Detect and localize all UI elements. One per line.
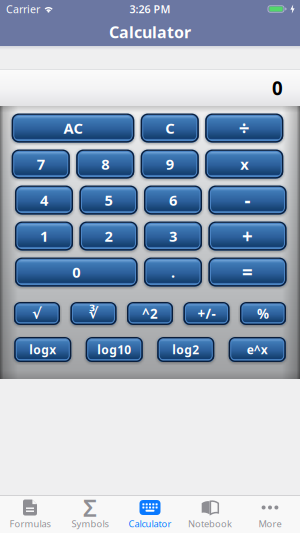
staticText: + (242, 224, 253, 248)
button[interactable]: √ (14, 302, 60, 325)
button[interactable]: logx (14, 337, 71, 362)
staticText: 8 (101, 154, 109, 174)
staticText: 3:26 PM (129, 2, 170, 16)
staticText: 3 (169, 226, 177, 246)
button[interactable]: 7 (12, 149, 70, 178)
button[interactable]: = (208, 257, 286, 286)
staticText: Carrier (6, 2, 40, 16)
staticText: AC (63, 118, 82, 138)
staticText: 5 (104, 190, 112, 210)
button[interactable]: 4 (15, 185, 73, 214)
button[interactable]: AC (12, 113, 134, 142)
staticText: √ (32, 305, 42, 322)
button[interactable]: 2 (79, 221, 137, 250)
button[interactable]: + (208, 221, 286, 250)
staticText: e^x (247, 341, 268, 357)
staticText: log2 (172, 341, 199, 357)
staticText: 6 (169, 190, 177, 210)
staticText: 0 (272, 76, 283, 100)
staticText: +/- (197, 305, 215, 322)
staticText: log10 (97, 341, 131, 357)
button[interactable]: e^x (229, 337, 286, 362)
button[interactable]: 3 (144, 221, 202, 250)
button[interactable]: 5 (79, 185, 137, 214)
button[interactable]: % (240, 302, 286, 325)
staticText: % (257, 305, 269, 322)
staticText: x (240, 154, 248, 174)
button[interactable]: Notebook (180, 497, 240, 533)
staticText: 9 (166, 154, 174, 174)
staticText: Calculator (109, 21, 191, 43)
staticText: 1 (40, 226, 48, 246)
button[interactable]: x (205, 149, 283, 178)
staticText: ÷ (239, 116, 250, 140)
button[interactable]: ^2 (127, 302, 173, 325)
button[interactable]: - (208, 185, 286, 214)
button[interactable]: log10 (86, 337, 143, 362)
button[interactable]: log2 (157, 337, 214, 362)
staticText: logx (29, 341, 56, 357)
staticText: Calculator (128, 517, 171, 530)
staticText: More (258, 517, 281, 530)
staticText: ∛ (88, 305, 98, 322)
staticText: = (242, 260, 253, 284)
staticText: Notebook (188, 517, 232, 530)
staticText: C (165, 118, 174, 138)
button[interactable]: 0 (15, 257, 137, 286)
staticText: 4 (40, 190, 48, 210)
button[interactable]: C (141, 113, 199, 142)
staticText: - (244, 188, 250, 212)
button[interactable]: 9 (141, 149, 199, 178)
staticText: . (171, 262, 175, 282)
button[interactable]: Formulas (0, 497, 60, 533)
staticText: 2 (104, 226, 112, 246)
staticText: 7 (37, 154, 45, 174)
staticText: Σ (83, 492, 97, 523)
button[interactable]: ∛ (70, 302, 116, 325)
button[interactable]: 6 (144, 185, 202, 214)
staticText: ^2 (142, 305, 158, 322)
button[interactable]: More (240, 497, 300, 533)
staticText: 0 (72, 262, 80, 282)
button[interactable]: 1 (15, 221, 73, 250)
button[interactable]: . (144, 257, 202, 286)
button[interactable]: Calculator (120, 497, 180, 533)
staticText: Formulas (9, 517, 50, 530)
button[interactable]: Σ (60, 497, 120, 533)
button[interactable]: ÷ (205, 113, 283, 142)
button[interactable]: +/- (183, 302, 229, 325)
button[interactable]: 8 (76, 149, 134, 178)
staticText: Symbols (71, 517, 108, 530)
